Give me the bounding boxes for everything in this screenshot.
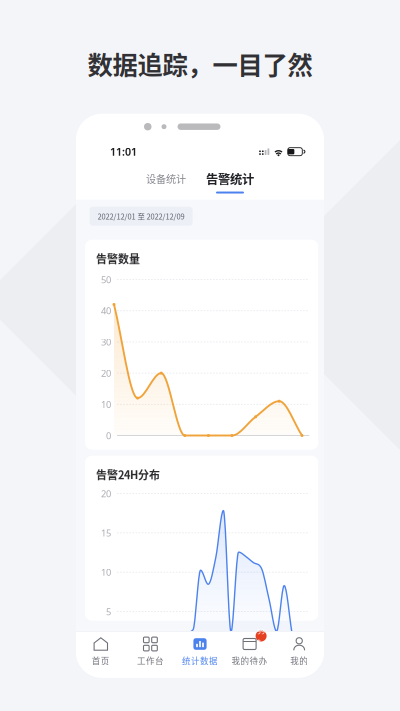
staticText: 数据追踪，一目了然 <box>87 45 312 82</box>
button[interactable]: 首页 <box>76 636 126 667</box>
button[interactable]: 99+ <box>225 636 274 667</box>
staticText: 30 <box>101 336 111 348</box>
staticText: 20 <box>101 487 111 500</box>
staticText: 统计数据 <box>182 654 218 667</box>
button[interactable]: 工作台 <box>126 636 175 667</box>
staticText: 告警统计 <box>206 170 254 188</box>
button[interactable]: 告警统计 <box>206 170 254 194</box>
staticText: 告警数量 <box>96 251 140 266</box>
button[interactable]: 统计数据 <box>175 636 225 667</box>
staticText: 0 <box>106 429 111 442</box>
staticText: 10 <box>101 566 111 578</box>
staticText: 告警24H分布 <box>96 467 160 482</box>
staticText: 2022/12/01 至 2022/12/09 <box>98 211 185 222</box>
button[interactable]: 2022/12/01 至 2022/12/09 <box>90 207 193 226</box>
staticText: 我的待办 <box>232 654 268 667</box>
staticText: 10 <box>101 398 111 410</box>
staticText: 40 <box>101 304 111 317</box>
staticText: 20 <box>101 367 111 379</box>
staticText: 5 <box>106 605 111 618</box>
staticText: 工作台 <box>137 654 164 667</box>
staticText: 我的 <box>290 654 308 667</box>
button[interactable]: 我的 <box>274 636 324 667</box>
staticText: 11:01 <box>110 145 137 159</box>
staticText: 50 <box>101 273 111 286</box>
staticText: 设备统计 <box>146 171 186 186</box>
staticText: 99+ <box>257 627 265 645</box>
button[interactable]: 设备统计 <box>146 171 186 192</box>
staticText: 首页 <box>92 654 110 667</box>
staticText: 15 <box>101 527 111 539</box>
